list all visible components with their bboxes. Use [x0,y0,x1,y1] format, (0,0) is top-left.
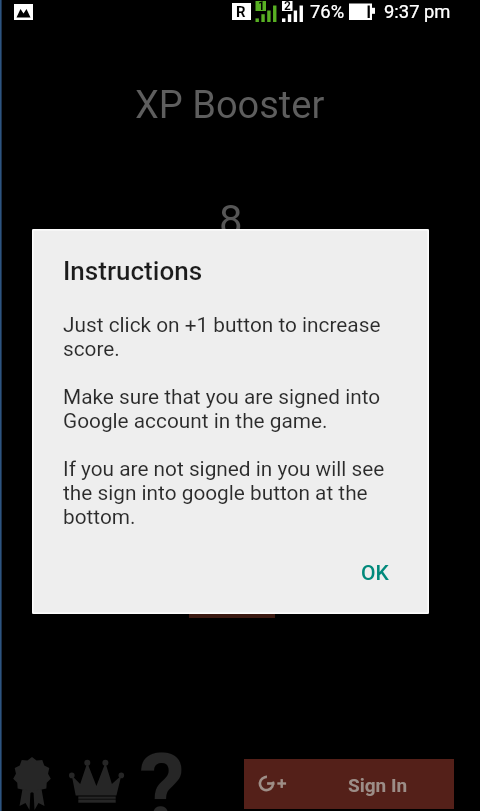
staticText: 1 [258,0,265,13]
staticText: 8 [219,196,243,245]
staticText: R [236,3,246,21]
staticText: 2 [284,0,291,13]
button[interactable]: Achievements [9,753,55,811]
staticText: 76% [310,1,345,23]
staticText: XP Booster [135,83,325,128]
button[interactable]: OK [345,551,405,596]
staticText: OK [361,561,389,586]
button[interactable]: Sign In [244,759,454,809]
button[interactable]: Help [137,731,199,811]
button[interactable]: +1 [189,570,275,618]
button[interactable]: Leaderboard [64,752,130,811]
staticText: 9:37 pm [384,1,451,23]
staticText: Sign In [348,774,408,796]
staticText: ? [139,734,185,811]
staticText: Instructions [63,256,203,286]
staticText: Just click on +1 button to increase scor… [63,313,418,529]
